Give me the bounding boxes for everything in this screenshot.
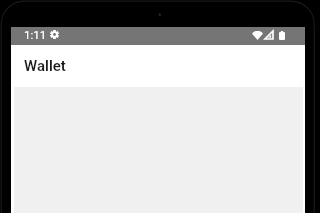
other: Battery full [279,31,285,40]
staticText: 1:11 [24,28,47,41]
other: Mobile signal [264,30,274,40]
staticText: Wallet [24,57,66,75]
other: Wi-Fi signal [252,31,263,40]
button[interactable]: Settings [50,30,59,39]
